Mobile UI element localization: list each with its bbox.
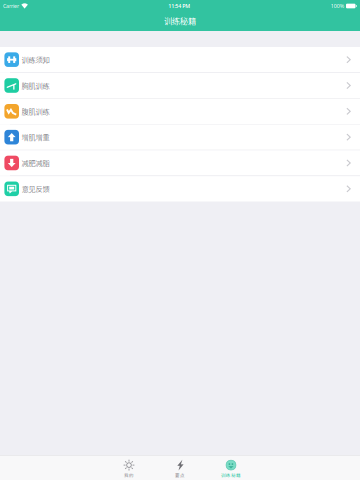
staticText: 增肌增重: [22, 132, 50, 142]
button[interactable]: 减肥减脂: [0, 150, 360, 176]
staticText: 减肥减脂: [22, 158, 50, 168]
staticText: Carrier: [3, 2, 19, 10]
staticText: 训练须知: [22, 54, 50, 65]
button[interactable]: 意见反馈: [0, 176, 360, 201]
staticText: 训练秘籍: [164, 15, 196, 27]
staticText: 意见反馈: [22, 184, 50, 194]
button[interactable]: 训练须知: [0, 47, 360, 72]
button[interactable]: 增肌增重: [0, 124, 360, 150]
button[interactable]: 要点: [154, 455, 205, 480]
staticText: 我的: [124, 472, 134, 479]
staticText: 11:54 PM: [168, 2, 190, 10]
button[interactable]: 胸肌训练: [0, 73, 360, 98]
staticText: 腹肌训练: [22, 106, 50, 116]
button[interactable]: 腹肌训练: [0, 99, 360, 124]
button[interactable]: 我的: [103, 455, 154, 480]
staticText: 100%: [331, 2, 344, 10]
staticText: 训练秘籍: [221, 472, 241, 479]
button[interactable]: 训练秘籍: [205, 455, 256, 480]
staticText: 胸肌训练: [22, 80, 50, 91]
staticText: 要点: [175, 472, 185, 479]
